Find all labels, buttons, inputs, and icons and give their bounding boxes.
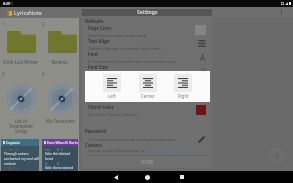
button[interactable]: Back bbox=[110, 171, 122, 183]
staticText: Colors the chords in the lyric. bbox=[88, 112, 139, 116]
staticText: D/F# E A bbox=[4, 166, 19, 170]
staticText: My Favourites bbox=[41, 118, 80, 124]
staticText: List of Incomplete Songs bbox=[4, 118, 38, 134]
staticText: Chord Color bbox=[88, 104, 114, 110]
staticText: Through waters uncharted my soul will em… bbox=[4, 151, 39, 166]
button[interactable]: Text Align bbox=[82, 38, 212, 50]
staticText: The master password to lock and unlock t… bbox=[88, 137, 176, 142]
staticText: Recents bbox=[40, 59, 79, 65]
button[interactable]: More options bbox=[277, 8, 286, 17]
staticText: 1 bbox=[2, 21, 5, 27]
staticText: Password bbox=[85, 128, 106, 134]
button[interactable]: Even When It Hurts bbox=[42, 139, 78, 171]
staticText: Font bbox=[88, 51, 98, 57]
staticText: From Last Winter bbox=[1, 59, 40, 65]
staticText: Text Align bbox=[88, 38, 110, 44]
button[interactable]: Right bbox=[174, 74, 192, 99]
staticText: 6:05 bbox=[3, 1, 12, 7]
staticText: Font Size bbox=[88, 64, 108, 70]
staticText: Em B C bbox=[45, 147, 63, 151]
button[interactable]: Center bbox=[139, 74, 157, 99]
staticText: 4 bbox=[42, 71, 45, 77]
button[interactable]: Font bbox=[82, 51, 212, 63]
staticText: Center bbox=[141, 93, 155, 99]
button[interactable]: Home bbox=[141, 171, 153, 183]
staticText: Settings bbox=[137, 9, 158, 16]
staticText: 2 bbox=[42, 21, 45, 27]
button[interactable]: Left bbox=[103, 74, 121, 99]
button[interactable]: Chord Color bbox=[82, 104, 212, 116]
staticText: 3 bbox=[2, 71, 5, 77]
staticText: Captain bbox=[6, 140, 20, 145]
staticText: anirudh.fasil@gmail.com bbox=[146, 148, 190, 153]
button[interactable]: DONE bbox=[82, 156, 212, 168]
button[interactable]: The master password to lock and unlock t… bbox=[82, 133, 212, 145]
button[interactable]: LyricsNote bbox=[7, 9, 42, 17]
button[interactable]: Folder bbox=[7, 31, 36, 53]
staticText: DONE bbox=[141, 159, 154, 165]
button[interactable]: Recent apps bbox=[176, 171, 188, 183]
button[interactable]: Playlist bbox=[47, 84, 77, 114]
staticText: Right bbox=[178, 93, 189, 99]
staticText: A bbox=[200, 52, 206, 63]
staticText: G D bbox=[45, 161, 60, 165]
button[interactable]: Folder bbox=[48, 31, 77, 53]
button[interactable]: Font Size bbox=[82, 64, 212, 76]
staticText: If 'System Font' is checked, the system … bbox=[88, 59, 177, 63]
staticText: Color used as a page background. bbox=[88, 33, 147, 37]
staticText: Contact bbox=[85, 142, 103, 148]
staticText: Defaults bbox=[85, 18, 104, 24]
staticText: LyricsNote bbox=[14, 9, 42, 17]
staticText: A Bm A bbox=[4, 147, 18, 151]
staticText: If 'System' is selected, the size depend… bbox=[88, 72, 187, 76]
staticText: Decides if the text is centered, left or… bbox=[88, 46, 162, 50]
button[interactable]: Page Color bbox=[82, 25, 212, 37]
staticText: Take these tainted hands bbox=[45, 165, 74, 171]
staticText: You can contact the developer at bbox=[88, 148, 146, 153]
staticText: Page Color bbox=[88, 25, 112, 31]
staticText: Even When It Hurts bbox=[47, 141, 78, 145]
staticText: 18 bbox=[200, 67, 206, 73]
button[interactable]: Playlist bbox=[6, 84, 36, 114]
staticText: Take this fainted heart bbox=[45, 151, 78, 161]
staticText: Left bbox=[108, 93, 116, 99]
button[interactable]: Captain bbox=[1, 139, 39, 171]
